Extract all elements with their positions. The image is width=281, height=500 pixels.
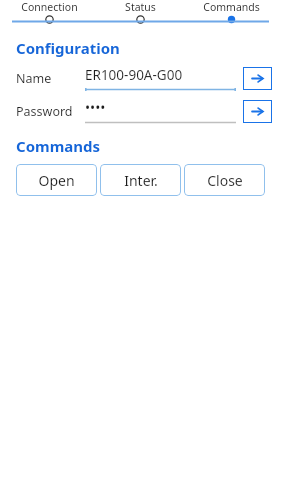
staticText: Commands: [16, 136, 101, 156]
staticText: Connection: [21, 0, 78, 14]
button[interactable]: Close: [184, 164, 265, 196]
staticText: Configuration: [16, 38, 120, 58]
button[interactable]: Commands: [186, 0, 277, 24]
staticText: Close: [207, 171, 243, 190]
staticText: Commands: [203, 0, 260, 14]
button[interactable]: Open: [16, 164, 97, 196]
staticText: Name: [16, 70, 85, 87]
staticText: Inter.: [124, 171, 158, 190]
staticText: ••••: [85, 99, 106, 117]
button[interactable]: Connection: [4, 0, 95, 24]
staticText: Status: [125, 0, 156, 14]
staticText: Open: [38, 171, 75, 190]
button[interactable]: Submit name: [243, 67, 272, 90]
button[interactable]: Submit password: [243, 100, 272, 123]
staticText: Password: [16, 103, 85, 120]
button[interactable]: Status: [95, 0, 186, 24]
staticText: ER100-90A-G00: [85, 66, 183, 84]
button[interactable]: Inter.: [100, 164, 181, 196]
